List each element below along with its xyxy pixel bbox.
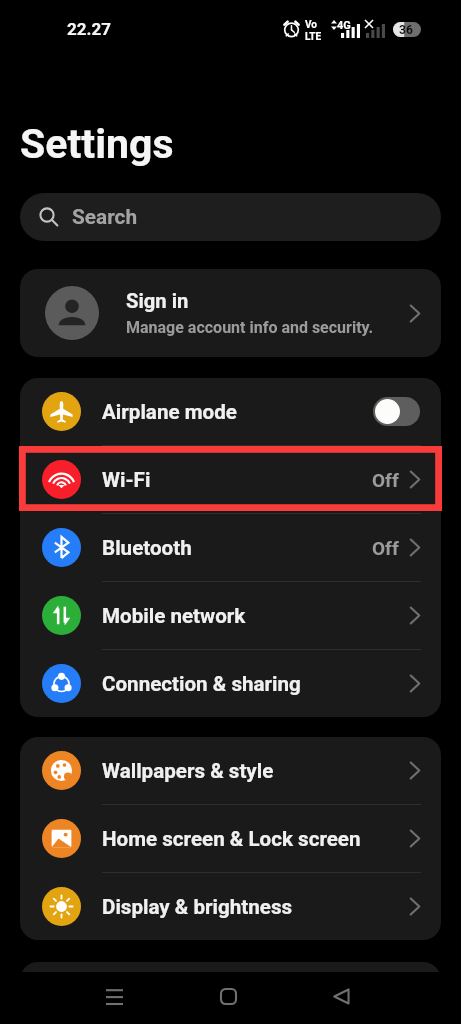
staticText: 36	[399, 23, 413, 37]
button[interactable]: Connection & sharing	[20, 650, 441, 717]
staticText: Vo	[305, 19, 317, 31]
staticText: Manage account info and security.	[126, 318, 374, 337]
button[interactable]: Wi-Fi	[20, 446, 441, 513]
button[interactable]: Bluetooth	[20, 514, 441, 581]
button[interactable]: Airplane mode toggle	[373, 397, 420, 426]
staticText: Sign in	[126, 289, 189, 313]
staticText: Wi-Fi	[102, 468, 372, 492]
button[interactable]: Airplane mode	[20, 378, 441, 445]
button[interactable]: Home screen & Lock screen	[20, 805, 441, 872]
button[interactable]: Display & brightness	[20, 873, 441, 940]
staticText: 4G	[337, 19, 351, 32]
staticText: Connection & sharing	[102, 672, 410, 696]
staticText: Bluetooth	[102, 536, 372, 560]
staticText: Off	[372, 469, 399, 491]
staticText: Settings	[20, 120, 174, 168]
button[interactable]: Recent apps	[92, 974, 136, 1018]
button[interactable]: Home	[206, 974, 250, 1018]
button[interactable]: Wallpapers & style	[20, 737, 441, 804]
staticText: Display & brightness	[102, 895, 410, 919]
staticText: 22.27	[67, 19, 111, 39]
staticText: Home screen & Lock screen	[102, 827, 410, 851]
staticText: Search	[72, 205, 138, 229]
button[interactable]: Search	[20, 193, 441, 241]
staticText: Mobile network	[102, 604, 410, 628]
button[interactable]: Mobile network	[20, 582, 441, 649]
staticText: Airplane mode	[102, 400, 373, 424]
button[interactable]: Back	[319, 974, 363, 1018]
staticText: Wallpapers & style	[102, 759, 410, 783]
staticText: Off	[372, 537, 399, 559]
staticText: LTE	[305, 31, 322, 43]
button[interactable]: Sign in	[20, 269, 441, 357]
